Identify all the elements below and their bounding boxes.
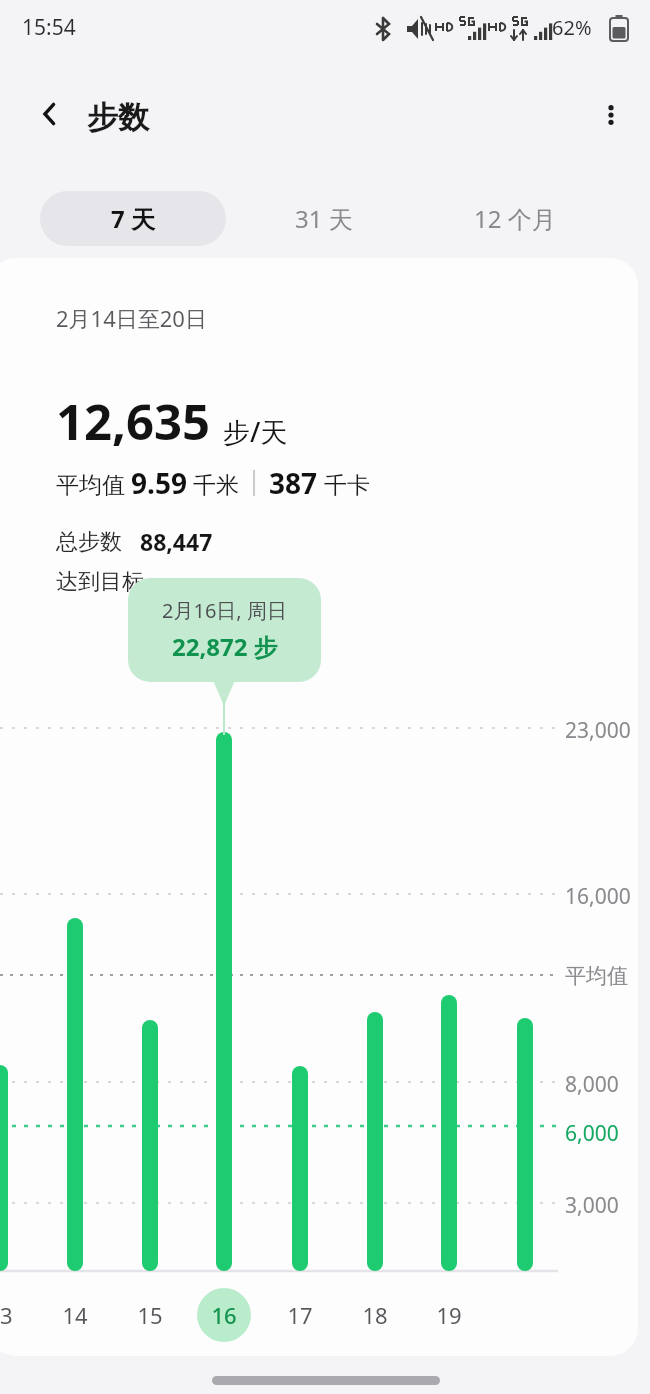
staticText: 3,000 xyxy=(565,1191,619,1220)
staticText: 88,447 xyxy=(140,526,213,557)
button[interactable]: More options xyxy=(586,90,636,140)
button[interactable]: 31 天 xyxy=(237,191,411,246)
staticText: 7 天 xyxy=(111,202,155,235)
button[interactable]: 17 xyxy=(273,1288,327,1342)
button[interactable]: 14 xyxy=(48,1288,102,1342)
staticText: 千米 xyxy=(187,468,239,499)
staticText: 千卡 xyxy=(318,468,370,499)
staticText: 9.59 xyxy=(131,464,187,502)
staticText: 6,000 xyxy=(565,1119,619,1148)
button[interactable]: 19 xyxy=(422,1288,476,1342)
staticText: 19 xyxy=(436,1300,462,1330)
staticText: 达到目标 xyxy=(56,568,144,596)
staticText: 16 xyxy=(211,1300,237,1330)
staticText: 步/天 xyxy=(223,413,288,450)
button[interactable]: 12 个月 xyxy=(420,191,610,246)
staticText: 13 xyxy=(0,1300,13,1330)
staticText: 14 xyxy=(62,1300,88,1330)
staticText: 2月16日, 周日 xyxy=(162,597,287,624)
staticText: 62% xyxy=(552,14,592,41)
button[interactable]: 18 xyxy=(348,1288,402,1342)
button[interactable]: 7 天 xyxy=(40,191,226,246)
staticText: 15 xyxy=(137,1300,163,1330)
staticText: 总步数 xyxy=(56,528,122,556)
staticText: 2月14日至20日 xyxy=(56,303,207,333)
button[interactable] xyxy=(197,1288,251,1342)
button[interactable]: 2月16日, 周日 xyxy=(128,578,321,682)
staticText: 17 xyxy=(287,1300,313,1330)
staticText: 平均值 xyxy=(565,963,628,989)
staticText: 23,000 xyxy=(565,716,631,745)
staticText: 8,000 xyxy=(565,1070,619,1099)
staticText: 22,872 步 xyxy=(172,630,278,663)
staticText: 步数 xyxy=(87,98,149,137)
button[interactable]: 13 xyxy=(0,1288,27,1342)
staticText: 18 xyxy=(362,1300,388,1330)
staticText: 12 个月 xyxy=(474,202,556,235)
staticText: 平均值 xyxy=(56,468,131,499)
staticText: 31 天 xyxy=(295,202,353,235)
button[interactable]: 16 xyxy=(197,1288,251,1342)
button[interactable]: Back xyxy=(26,90,74,138)
staticText: 16,000 xyxy=(565,882,631,911)
staticText: 387 xyxy=(269,464,318,502)
staticText: 12,635 xyxy=(56,388,211,455)
button[interactable]: 15 xyxy=(123,1288,177,1342)
staticText: 15:54 xyxy=(22,13,76,42)
